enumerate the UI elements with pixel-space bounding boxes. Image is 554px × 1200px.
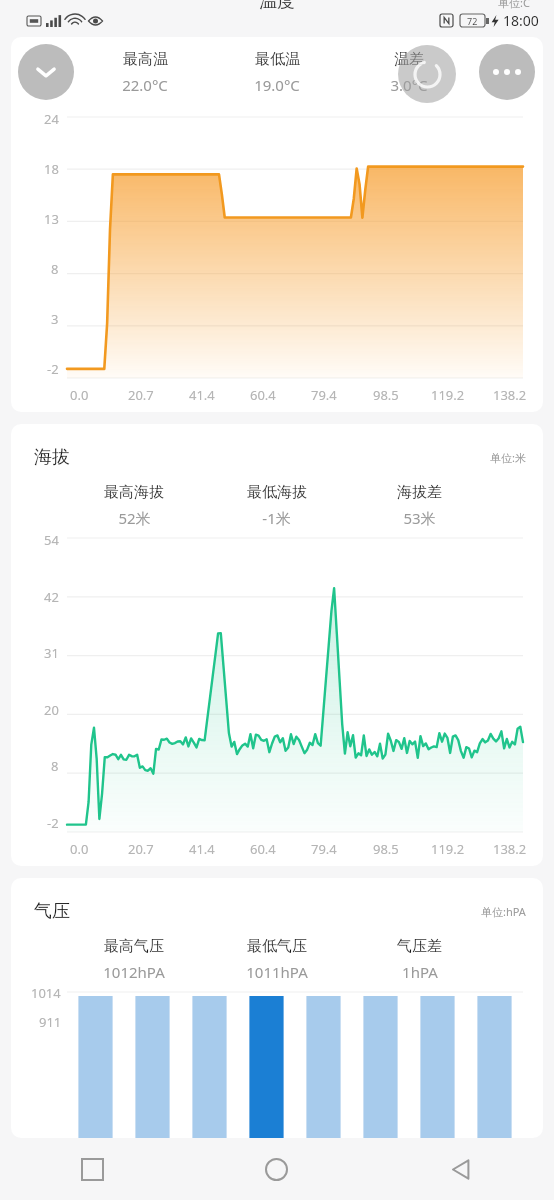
staticText: 气压差 <box>397 937 442 956</box>
staticText: 单位:C <box>498 0 530 10</box>
staticText: 3 <box>51 310 59 328</box>
staticText: 最高海拔 <box>104 483 164 502</box>
staticText: 海拔差 <box>397 483 442 502</box>
button[interactable]: Refresh <box>398 45 456 103</box>
staticText: 79.4 <box>311 386 337 404</box>
staticText: 19.0°C <box>254 75 300 95</box>
staticText: 22.0°C <box>122 75 168 95</box>
staticText: 98.5 <box>373 386 399 404</box>
button[interactable]: 气压 <box>11 878 543 1138</box>
staticText: 8 <box>51 260 59 278</box>
staticText: -1米 <box>262 508 291 528</box>
staticText: 98.5 <box>373 840 399 858</box>
staticText: 单位:米 <box>490 450 526 465</box>
staticText: 1011hPA <box>246 962 308 982</box>
staticText: 41.4 <box>189 840 215 858</box>
staticText: 13 <box>44 210 59 228</box>
staticText: 138.2 <box>493 386 527 404</box>
staticText: 18:00 <box>503 11 539 30</box>
staticText: -2 <box>47 814 59 832</box>
staticText: 53米 <box>403 508 436 528</box>
staticText: 海拔 <box>34 446 70 469</box>
staticText: 60.4 <box>250 386 276 404</box>
staticText: 最低气压 <box>247 937 307 956</box>
staticText: 最低海拔 <box>247 483 307 502</box>
staticText: 温差 <box>394 50 424 69</box>
staticText: 54 <box>44 531 59 549</box>
staticText: 3.0°C <box>390 75 428 95</box>
staticText: 8 <box>51 757 59 775</box>
staticText: 最高温 <box>123 50 168 69</box>
staticText: 1012hPA <box>103 962 165 982</box>
staticText: 0.0 <box>70 386 89 404</box>
button[interactable]: More options <box>479 44 535 100</box>
staticText: 单位:hPA <box>481 904 526 919</box>
staticText: 温度 <box>259 0 295 13</box>
staticText: 0.0 <box>70 840 89 858</box>
staticText: -2 <box>47 360 59 378</box>
staticText: 最低温 <box>255 50 300 69</box>
staticText: 18 <box>44 160 59 178</box>
staticText: 20.7 <box>128 386 154 404</box>
staticText: 79.4 <box>311 840 337 858</box>
staticText: 119.2 <box>431 840 465 858</box>
staticText: 1hPA <box>402 962 438 982</box>
button[interactable]: Home <box>184 1138 369 1200</box>
staticText: 138.2 <box>493 840 527 858</box>
staticText: 52米 <box>118 508 151 528</box>
button[interactable]: Collapse <box>18 44 74 100</box>
button[interactable]: Back <box>369 1138 554 1200</box>
button[interactable]: 海拔 <box>11 424 543 866</box>
staticText: 24 <box>44 110 59 128</box>
staticText: 31 <box>44 644 59 662</box>
staticText: 1014 <box>31 984 61 1002</box>
staticText: 气压 <box>34 900 70 923</box>
button[interactable]: Recents <box>0 1138 184 1200</box>
staticText: 119.2 <box>431 386 465 404</box>
staticText: 72 <box>467 15 478 27</box>
staticText: 42 <box>44 588 59 606</box>
staticText: 20.7 <box>128 840 154 858</box>
staticText: 60.4 <box>250 840 276 858</box>
staticText: 911 <box>39 1013 62 1031</box>
staticText: 最高气压 <box>104 937 164 956</box>
staticText: 20 <box>44 701 59 719</box>
staticText: 41.4 <box>189 386 215 404</box>
